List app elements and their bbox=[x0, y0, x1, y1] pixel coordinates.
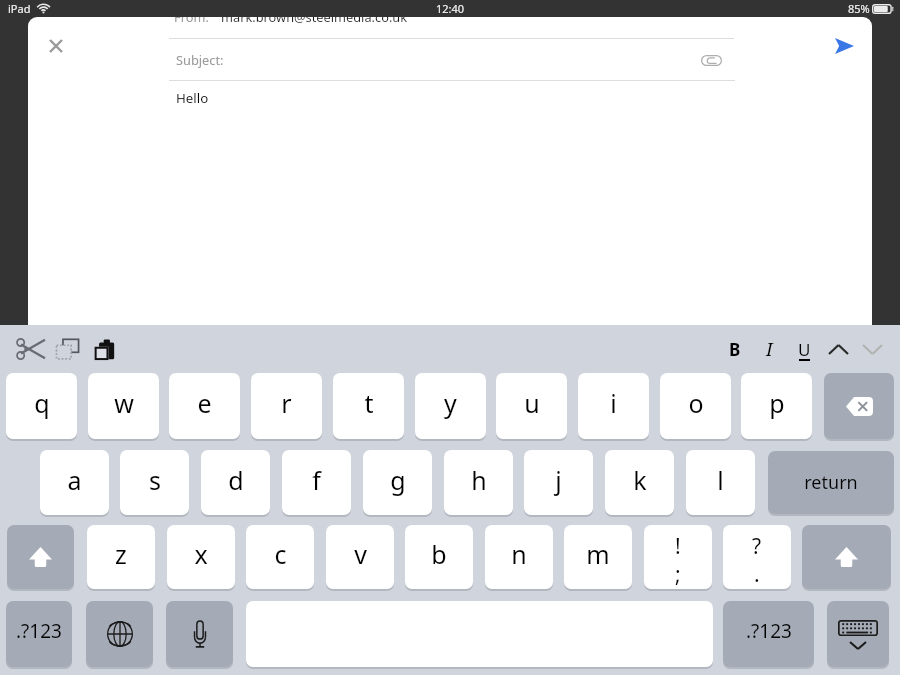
button[interactable]: e bbox=[169, 373, 240, 439]
button[interactable]: Next field bbox=[855, 332, 889, 366]
staticText: y bbox=[444, 386, 457, 420]
staticText: u bbox=[524, 386, 540, 420]
button[interactable]: Shift bbox=[7, 525, 74, 589]
staticText: .?123 bbox=[16, 618, 62, 644]
button[interactable]: ! bbox=[644, 525, 712, 589]
staticText: n bbox=[511, 537, 527, 571]
staticText: . bbox=[754, 560, 760, 589]
staticText: k bbox=[633, 463, 647, 497]
button[interactable]: x bbox=[167, 525, 235, 589]
staticText: z bbox=[115, 537, 127, 571]
staticText: mark.brown@steelmedia.co.uk bbox=[221, 17, 408, 25]
staticText: iPad bbox=[8, 1, 31, 16]
button[interactable]: Previous field bbox=[821, 332, 855, 366]
button[interactable]: o bbox=[660, 373, 731, 439]
staticText: 12:40 bbox=[436, 1, 465, 16]
staticText: I bbox=[766, 337, 773, 362]
staticText: Hello bbox=[176, 89, 209, 107]
button[interactable]: g bbox=[363, 450, 432, 515]
staticText: ? bbox=[752, 532, 762, 561]
button[interactable]: v bbox=[326, 525, 394, 589]
button[interactable]: n bbox=[485, 525, 553, 589]
staticText: e bbox=[197, 386, 212, 420]
button[interactable]: d bbox=[201, 450, 270, 515]
button[interactable]: k bbox=[605, 450, 674, 515]
staticText: d bbox=[228, 463, 244, 497]
button[interactable]: .?123 bbox=[6, 601, 72, 667]
button[interactable]: Attach bbox=[693, 42, 729, 78]
button[interactable]: return bbox=[768, 451, 894, 514]
button[interactable]: t bbox=[333, 373, 404, 439]
staticText: t bbox=[364, 386, 374, 420]
button[interactable]: s bbox=[120, 450, 189, 515]
button[interactable]: z bbox=[87, 525, 155, 589]
staticText: f bbox=[312, 463, 321, 497]
staticText: ! bbox=[675, 532, 681, 561]
button[interactable]: i bbox=[578, 373, 649, 439]
button[interactable]: c bbox=[246, 525, 314, 589]
staticText: m bbox=[586, 537, 610, 571]
button[interactable]: r bbox=[251, 373, 322, 439]
staticText: c bbox=[274, 537, 287, 571]
staticText: U bbox=[798, 338, 811, 361]
staticText: 85% bbox=[848, 1, 870, 16]
staticText: return bbox=[804, 470, 858, 495]
staticText: ; bbox=[675, 560, 681, 589]
staticText: g bbox=[390, 463, 406, 497]
button[interactable]: m bbox=[564, 525, 632, 589]
staticText: l bbox=[717, 463, 724, 497]
staticText: x bbox=[194, 537, 208, 571]
button[interactable]: w bbox=[88, 373, 159, 439]
staticText: r bbox=[281, 386, 292, 420]
staticText: j bbox=[555, 463, 562, 497]
staticText: w bbox=[114, 386, 134, 420]
button[interactable]: ? bbox=[723, 525, 791, 589]
staticText: From: bbox=[174, 17, 209, 25]
button[interactable]: q bbox=[6, 373, 77, 439]
button[interactable]: U bbox=[787, 332, 821, 366]
button[interactable]: Close bbox=[28, 18, 84, 74]
button[interactable]: .?123 bbox=[723, 601, 814, 667]
staticText: o bbox=[688, 386, 704, 420]
button[interactable]: Paste bbox=[86, 331, 122, 367]
staticText: v bbox=[354, 537, 367, 571]
button[interactable]: f bbox=[282, 450, 351, 515]
button[interactable]: Language bbox=[86, 601, 153, 667]
button[interactable]: p bbox=[741, 373, 812, 439]
button[interactable]: Hide keyboard bbox=[827, 601, 889, 667]
button[interactable]: Send bbox=[816, 18, 872, 74]
button[interactable]: Shift bbox=[802, 525, 891, 589]
button[interactable]: Copy bbox=[50, 331, 86, 367]
staticText: p bbox=[769, 386, 785, 420]
staticText: Subject: bbox=[176, 51, 224, 68]
staticText: B bbox=[729, 338, 741, 361]
button[interactable]: Backspace bbox=[824, 373, 894, 439]
staticText: h bbox=[471, 463, 487, 497]
staticText: b bbox=[431, 537, 447, 571]
staticText: s bbox=[149, 463, 161, 497]
button[interactable]: u bbox=[496, 373, 567, 439]
button[interactable]: l bbox=[686, 450, 755, 515]
staticText: .?123 bbox=[746, 618, 792, 644]
button[interactable]: B bbox=[718, 332, 752, 366]
button[interactable]: a bbox=[40, 450, 109, 515]
button[interactable]: Dictate bbox=[166, 601, 233, 667]
button[interactable]: b bbox=[405, 525, 473, 589]
staticText: a bbox=[67, 463, 82, 497]
button[interactable]: h bbox=[444, 450, 513, 515]
staticText: q bbox=[34, 386, 50, 420]
button[interactable]: I bbox=[752, 332, 786, 366]
staticText: i bbox=[610, 386, 617, 420]
button[interactable]: j bbox=[524, 450, 593, 515]
button[interactable]: y bbox=[415, 373, 486, 439]
button[interactable]: Cut bbox=[13, 331, 49, 367]
